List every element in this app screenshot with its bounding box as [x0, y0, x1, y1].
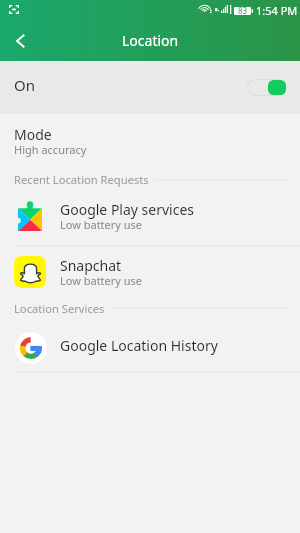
staticText: Low battery use — [60, 217, 143, 232]
button[interactable]: Google Play services — [0, 188, 300, 244]
button[interactable]: Mode — [0, 114, 300, 164]
staticText: Location — [122, 31, 179, 50]
staticText: Snapchat — [60, 256, 122, 275]
staticText: Location Services — [14, 301, 105, 316]
staticText: Google Play services — [60, 200, 195, 219]
staticText: 1:54 PM — [256, 3, 298, 18]
button[interactable]: Google Location History — [0, 320, 300, 376]
staticText: On — [14, 75, 35, 95]
staticText: 83 — [238, 5, 248, 16]
staticText: High accuracy — [14, 142, 87, 157]
button[interactable]: Back — [2, 21, 38, 57]
staticText: Recent Location Requests — [14, 172, 149, 187]
staticText: Mode — [14, 125, 52, 144]
button[interactable]: Snapchat — [0, 244, 300, 300]
staticText: Low battery use — [60, 273, 143, 288]
button[interactable]: Location on/off — [247, 79, 286, 96]
staticText: Google Location History — [60, 336, 218, 355]
button[interactable]: On — [0, 61, 300, 114]
